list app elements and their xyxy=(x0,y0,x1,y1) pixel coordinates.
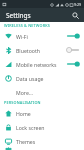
staticText: Wi-Fi xyxy=(16,33,66,40)
staticText: Mobile networks xyxy=(16,61,66,68)
staticText: Bluetooth xyxy=(16,47,66,54)
button[interactable]: Lock screen xyxy=(0,120,84,134)
button[interactable]: Bluetooth xyxy=(0,43,84,57)
staticText: Data usage xyxy=(16,75,80,82)
staticText: PERSONALISATION xyxy=(4,100,41,105)
staticText: Lock screen xyxy=(16,124,80,131)
button[interactable]: Mobile networks xyxy=(0,57,84,71)
button[interactable]: Data usage xyxy=(0,71,84,85)
button[interactable]: On xyxy=(66,31,80,41)
staticText: Settings xyxy=(6,11,31,20)
staticText: 9:29 xyxy=(74,2,82,7)
button[interactable]: Search xyxy=(69,9,81,21)
button[interactable]: Off xyxy=(66,45,80,55)
staticText: WIRELESS & NETWORKS xyxy=(4,23,50,28)
staticText: Themes xyxy=(16,138,80,145)
button[interactable]: Wi-Fi xyxy=(0,29,84,43)
staticText: More... xyxy=(16,89,80,96)
button[interactable]: Home xyxy=(0,106,84,120)
button[interactable]: On xyxy=(66,59,80,69)
button[interactable]: More... xyxy=(0,85,84,99)
button[interactable]: Status bar xyxy=(0,148,84,150)
button[interactable]: Themes xyxy=(0,134,84,148)
staticText: Home xyxy=(16,110,80,117)
